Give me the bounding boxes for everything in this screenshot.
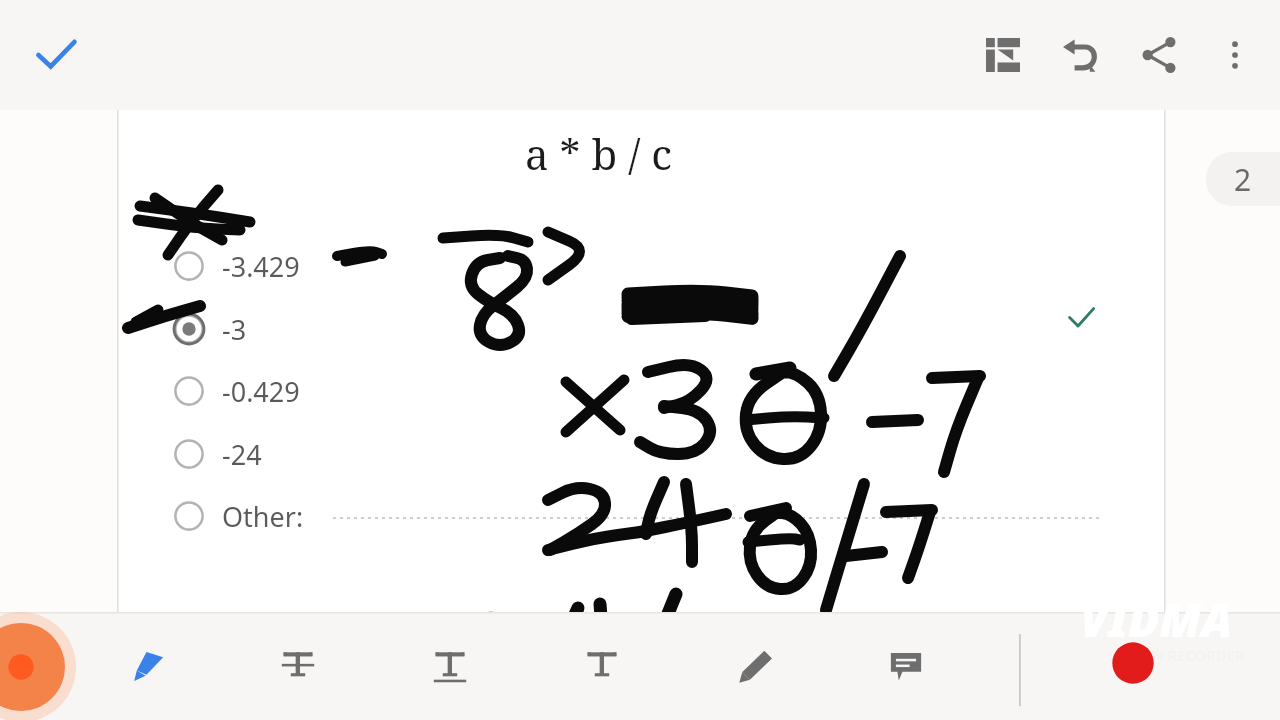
button[interactable]: -3.429 xyxy=(172,238,352,294)
button[interactable]: Highlighter xyxy=(110,626,190,706)
button[interactable]: Draw xyxy=(716,626,796,706)
button[interactable]: Done xyxy=(20,19,92,91)
button[interactable]: -0.429 xyxy=(172,363,352,419)
staticText: SCREEN RECORDER xyxy=(1108,645,1245,665)
button[interactable]: -3 xyxy=(172,301,352,357)
staticText: VIDMA xyxy=(1080,588,1233,651)
staticText: -0.429 xyxy=(222,373,300,410)
button[interactable]: More options xyxy=(1198,18,1272,92)
button[interactable]: 2 xyxy=(1206,152,1280,206)
button[interactable]: Underline xyxy=(410,626,490,706)
button[interactable]: Insert xyxy=(964,16,1042,94)
button[interactable]: Text xyxy=(562,626,642,706)
staticText: 2 xyxy=(1234,159,1252,200)
button[interactable]: Screen recorder xyxy=(0,612,76,720)
staticText: -24 xyxy=(222,436,262,473)
button[interactable]: Share xyxy=(1120,16,1198,94)
button[interactable]: -24 xyxy=(172,426,352,482)
staticText: Other: xyxy=(222,498,304,535)
staticText: a * b / c xyxy=(525,125,672,182)
button[interactable]: Comment xyxy=(866,626,946,706)
staticText: -3 xyxy=(222,311,247,348)
button[interactable]: Undo xyxy=(1042,16,1120,94)
button[interactable]: Strikethrough xyxy=(258,626,338,706)
staticText: -3.429 xyxy=(222,248,300,285)
button[interactable]: Other: xyxy=(172,488,352,544)
